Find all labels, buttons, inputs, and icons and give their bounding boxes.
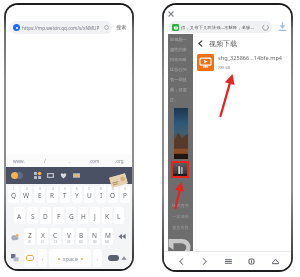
button[interactable]: Forward: [197, 254, 211, 268]
button[interactable]: 搜索: [114, 21, 129, 34]
button[interactable]: Close: [167, 10, 175, 18]
button[interactable]: 0: [120, 186, 130, 203]
button[interactable]: 4: [47, 186, 58, 203]
staticText: 785 kB: [218, 65, 230, 70]
staticText: X: [41, 231, 45, 240]
staticText: B: [79, 231, 84, 240]
button[interactable]: M: [102, 228, 113, 245]
staticText: G: [69, 212, 74, 221]
button[interactable]: Backspace: [115, 228, 130, 245]
button[interactable]: H: [78, 207, 88, 224]
button[interactable]: G: [66, 207, 76, 224]
staticText: CE: [54, 240, 58, 244]
staticText: 7: [88, 187, 90, 191]
staticText: F: [57, 212, 61, 221]
staticText: 重直所有: [172, 225, 189, 230]
button[interactable]: 6: [72, 186, 82, 203]
button[interactable]: 3: [34, 186, 45, 203]
button[interactable]: S: [27, 207, 38, 224]
button[interactable]: https://mp.weixin.qq.com/s/xNMUP: [10, 21, 112, 34]
staticText: NE: [93, 240, 97, 244]
staticText: XI: [41, 240, 44, 244]
button[interactable]: L: [114, 207, 124, 224]
button[interactable]: V: [63, 228, 74, 245]
button[interactable]: shg_325866...14bfe.mp4: [193, 50, 291, 74]
button[interactable]: Z: [24, 228, 35, 245]
staticText: 现优秀书: [172, 203, 189, 208]
button[interactable]: Keyboard switch: [8, 249, 22, 267]
staticText: 5: [64, 187, 66, 191]
staticText: 3: [39, 187, 41, 191]
button[interactable]: D: [40, 207, 51, 224]
button[interactable]: Toggle: [11, 172, 23, 179]
staticText: .org: [115, 158, 124, 164]
staticText: M: [105, 231, 111, 240]
button[interactable]: C: [50, 228, 61, 245]
staticText: P: [123, 191, 127, 200]
button[interactable]: Shift: [8, 228, 22, 245]
button[interactable]: .org: [107, 154, 132, 167]
staticText: 短视频一: [170, 37, 187, 42]
button[interactable]: B: [76, 228, 87, 245]
button[interactable]: Tabs: [244, 254, 258, 268]
staticText: 2: [26, 187, 28, 191]
staticText: T: [63, 191, 67, 200]
staticText: .com: [89, 158, 100, 164]
button[interactable]: .com: [82, 154, 107, 167]
button[interactable]: Emoji: [24, 249, 36, 267]
button[interactable]: 得，又省下几百块钱...不解释，老惨...: [169, 21, 272, 33]
button[interactable]: 1: [8, 186, 19, 203]
staticText: .: [97, 254, 99, 262]
staticText: W: [23, 191, 30, 200]
staticText: D: [43, 212, 48, 221]
button[interactable]: Home: [268, 254, 282, 268]
staticText: www.: [13, 158, 25, 164]
button[interactable]: X: [37, 228, 48, 245]
button[interactable]: Download: [278, 22, 287, 31]
button[interactable]: 7: [84, 186, 94, 203]
button[interactable]: 8: [96, 186, 106, 203]
staticText: 属性约束: [170, 47, 187, 52]
button[interactable]: www.: [6, 154, 32, 167]
staticText: I: [100, 191, 103, 200]
staticText: ,: [42, 254, 44, 262]
staticText: Q: [11, 191, 17, 200]
staticText: 9: [112, 187, 114, 191]
button[interactable]: K: [102, 207, 112, 224]
staticText: 4: [52, 187, 54, 191]
button[interactable]: F: [53, 207, 64, 224]
button[interactable]: 5: [60, 186, 70, 203]
button[interactable]: 2: [21, 186, 32, 203]
button[interactable]: J: [90, 207, 100, 224]
staticText: 频，仅需: [170, 87, 187, 92]
staticText: 0: [124, 187, 126, 191]
button[interactable]: A: [14, 207, 25, 224]
staticText: ZE: [28, 240, 32, 244]
staticText: A: [17, 212, 22, 221]
staticText: 正。: [170, 97, 179, 102]
staticText: 有一批技: [170, 77, 187, 82]
button[interactable]: .: [93, 249, 102, 267]
staticText: K: [105, 212, 110, 221]
button[interactable]: Back: [196, 39, 205, 48]
button[interactable]: Reload: [262, 24, 269, 31]
button[interactable]: /: [32, 154, 57, 167]
staticText: 一定是特: [172, 214, 189, 219]
staticText: 1: [13, 187, 15, 191]
staticText: BO: [79, 240, 84, 244]
button[interactable]: Back: [174, 254, 188, 268]
staticText: J: [94, 212, 96, 221]
staticText: H: [81, 212, 86, 221]
button[interactable]: Enter: [104, 249, 130, 267]
button[interactable]: N: [89, 228, 100, 245]
staticText: U: [87, 191, 92, 200]
button[interactable]: space: [49, 249, 91, 267]
button[interactable]: 9: [108, 186, 118, 203]
button[interactable]: Menu: [221, 254, 235, 268]
staticText: 抖音的看: [170, 57, 187, 62]
staticText: L: [117, 212, 121, 221]
button[interactable]: ,: [38, 249, 47, 267]
staticText: Z: [28, 231, 32, 240]
staticText: Y: [75, 191, 79, 200]
